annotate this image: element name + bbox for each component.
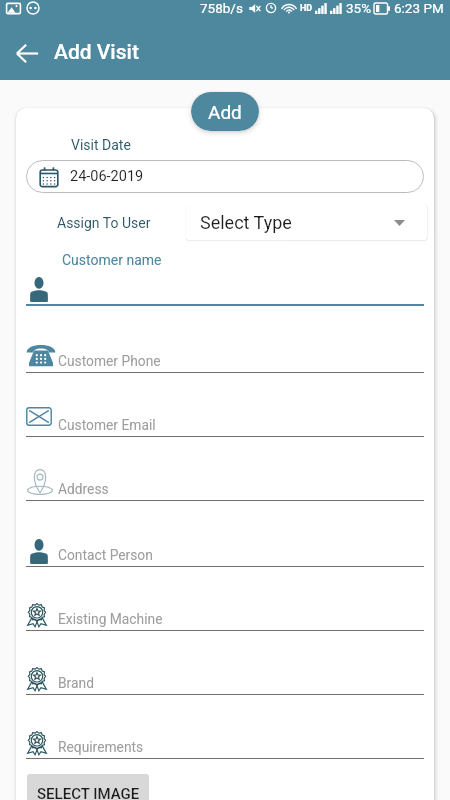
staticText: Add [208, 101, 242, 123]
staticText: 6:23 PM [394, 0, 444, 16]
button[interactable]: Select Type [186, 205, 427, 240]
button[interactable]: 24-06-2019 [26, 160, 424, 193]
staticText: Customer name [62, 252, 162, 268]
button[interactable]: SELECT IMAGE [27, 774, 149, 800]
staticText: Address [58, 481, 109, 497]
staticText: SELECT IMAGE [37, 785, 140, 800]
button[interactable]: Back [0, 26, 54, 80]
staticText: Customer Phone [58, 353, 161, 369]
staticText: Customer Email [58, 417, 156, 433]
staticText: Add Visit [54, 40, 139, 65]
staticText: 35% [346, 0, 372, 16]
staticText: 758b/s [200, 0, 243, 16]
staticText: Visit Date [71, 137, 131, 153]
staticText: Existing Machine [58, 611, 163, 627]
staticText: Select Type [200, 212, 292, 233]
staticText: Contact Person [58, 547, 153, 563]
staticText: Requirements [58, 739, 144, 755]
staticText: HD [300, 3, 313, 14]
staticText: 24-06-2019 [70, 168, 144, 185]
button[interactable]: Add [191, 92, 259, 131]
staticText: Brand [58, 675, 94, 691]
staticText: Assign To User [57, 215, 151, 231]
